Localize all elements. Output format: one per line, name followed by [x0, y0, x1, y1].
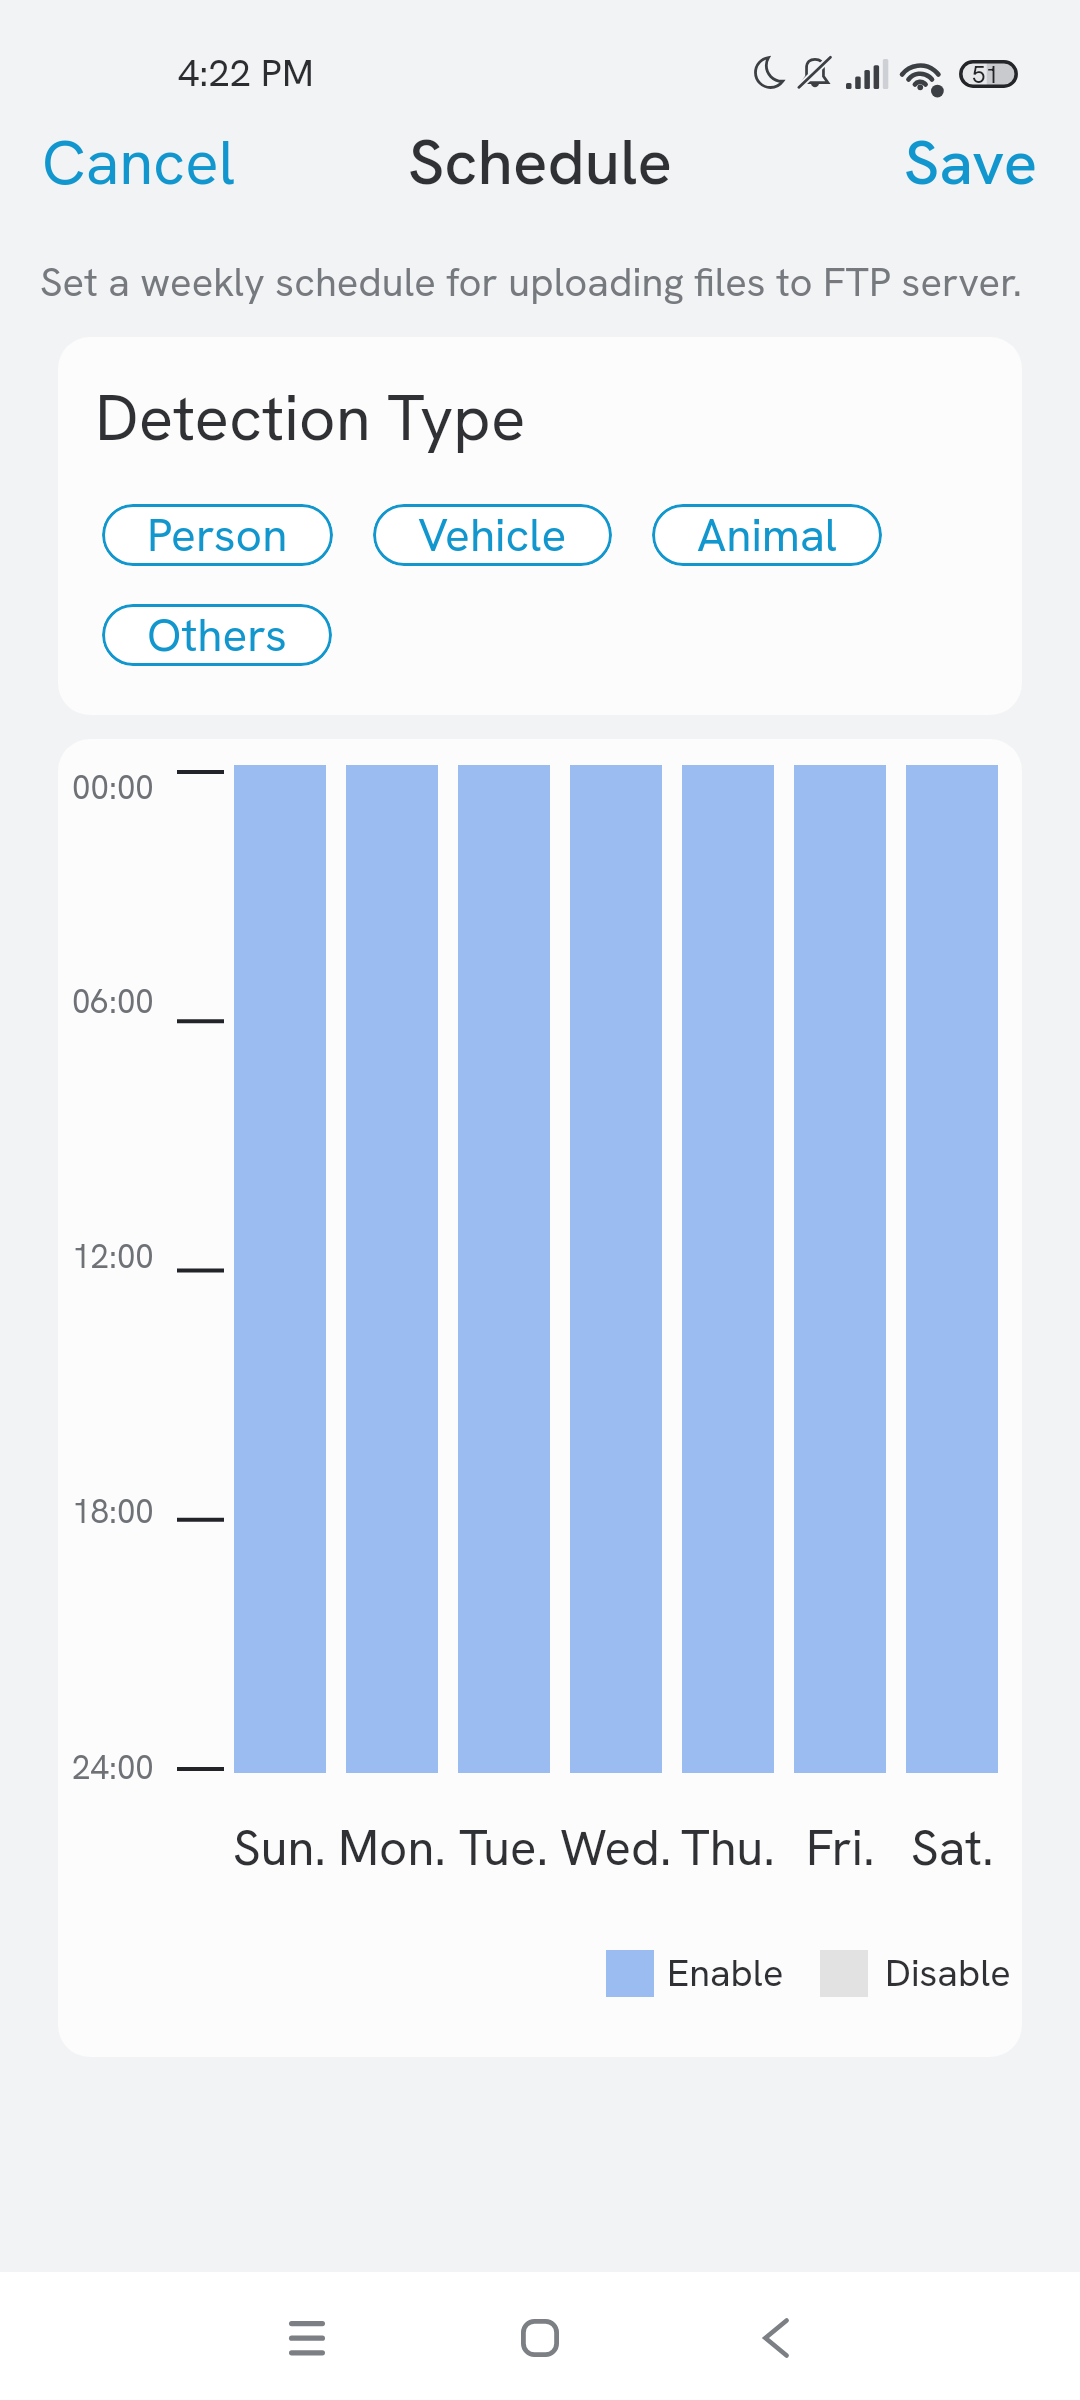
- staticText: Thu.: [681, 1816, 776, 1880]
- staticText: 00:00: [72, 766, 154, 809]
- staticText: 51: [972, 59, 999, 87]
- staticText: Person: [147, 505, 288, 565]
- staticText: Sun.: [233, 1816, 327, 1880]
- staticText: Schedule: [408, 120, 672, 203]
- staticText: Animal: [697, 505, 837, 565]
- staticText: Others: [147, 605, 287, 665]
- staticText: 12:00: [72, 1235, 154, 1278]
- staticText: Sat.: [911, 1816, 994, 1880]
- button[interactable]: Home: [480, 2272, 600, 2400]
- staticText: Tue.: [459, 1816, 549, 1880]
- staticText: Set a weekly schedule for uploading file…: [40, 256, 1023, 308]
- staticText: Fri.: [806, 1816, 875, 1880]
- staticText: 18:00: [72, 1490, 154, 1533]
- staticText: Detection Type: [95, 376, 526, 459]
- staticText: Enable: [667, 1948, 784, 1998]
- staticText: 06:00: [72, 980, 154, 1023]
- button[interactable]: Save: [880, 112, 1080, 212]
- button[interactable]: Animal: [652, 504, 882, 566]
- staticText: 24:00: [72, 1746, 154, 1789]
- button[interactable]: Others: [102, 604, 332, 666]
- staticText: Save: [904, 122, 1038, 202]
- staticText: Vehicle: [418, 505, 567, 565]
- staticText: Wed.: [560, 1816, 672, 1880]
- button[interactable]: Vehicle: [373, 504, 612, 566]
- button[interactable]: Person: [102, 504, 333, 566]
- button[interactable]: Cancel: [0, 112, 260, 212]
- button[interactable]: Recent apps: [247, 2272, 367, 2400]
- staticText: Disable: [885, 1948, 1011, 1998]
- staticText: Cancel: [42, 122, 236, 202]
- staticText: 4:22 PM: [178, 48, 314, 98]
- staticText: Mon.: [338, 1816, 446, 1880]
- button[interactable]: Back: [713, 2272, 833, 2400]
